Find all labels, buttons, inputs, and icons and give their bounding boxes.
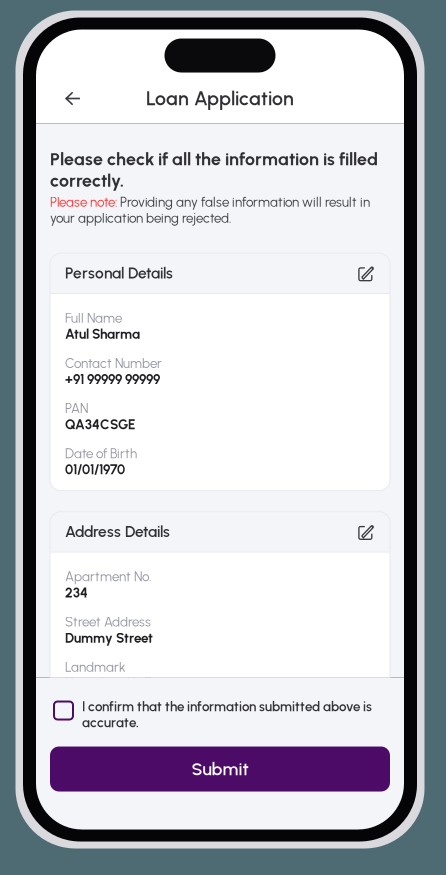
staticText: Please check if all the information is f… — [50, 148, 378, 191]
staticText: Dummy Street — [65, 630, 153, 646]
button[interactable]: Edit Personal Details — [353, 260, 379, 286]
staticText: PAN — [65, 400, 88, 416]
button[interactable]: Submit — [36, 746, 404, 791]
staticText: 400001 — [65, 720, 108, 736]
staticText: Personal Details — [65, 264, 173, 282]
staticText: Full Name — [65, 310, 122, 326]
button[interactable]: Back — [55, 82, 91, 114]
staticText: Contact Number — [65, 355, 162, 371]
staticText: Loan Application — [146, 87, 294, 110]
button[interactable]: Edit Address Details — [353, 519, 379, 545]
staticText: I confirm that the information submitted… — [82, 698, 372, 730]
staticText: Submit — [191, 758, 248, 780]
staticText: Please note: — [50, 194, 117, 210]
staticText: Near City Mall — [65, 675, 151, 691]
staticText: Landmark — [65, 659, 126, 675]
staticText: Address Details — [65, 522, 170, 541]
button[interactable]: I confirm that the information submitted… — [36, 677, 404, 730]
staticText: +91 99999 99999 — [65, 371, 160, 387]
staticText: Pin Code — [65, 704, 116, 720]
staticText: Street Address — [65, 614, 151, 630]
staticText: Please note: Providing any false informa… — [50, 194, 370, 226]
staticText: Apartment No. — [65, 569, 151, 585]
staticText: Date of Birth — [65, 445, 137, 461]
staticText: QA34CSGE — [65, 416, 135, 433]
staticText: Atul Sharma — [65, 326, 140, 342]
staticText: 234 — [65, 585, 88, 601]
staticText: 01/01/1970 — [65, 461, 125, 478]
